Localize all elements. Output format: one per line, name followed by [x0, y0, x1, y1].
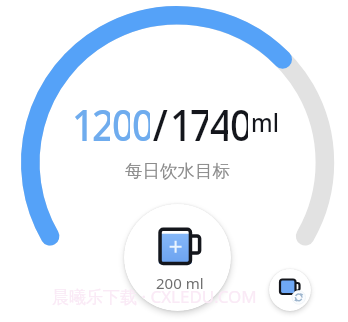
staticText: 7: [190, 94, 208, 146]
staticText: 4: [210, 94, 228, 146]
staticText: 200 ml: [156, 273, 204, 293]
staticText: ml: [251, 104, 279, 139]
button[interactable]: Switch cup: [269, 269, 311, 311]
staticText: 每日饮水目标: [125, 160, 230, 182]
staticText: 0: [112, 94, 130, 146]
staticText: /: [153, 94, 168, 146]
staticText: 0: [132, 94, 150, 146]
staticText: 2: [92, 94, 110, 146]
button[interactable]: 200 ml: [124, 204, 231, 311]
staticText: 晨曦乐下载 · CXLEDU.COM: [52, 285, 257, 308]
staticText: 1: [72, 94, 90, 146]
staticText: 0: [230, 94, 248, 146]
staticText: 1: [170, 94, 188, 146]
